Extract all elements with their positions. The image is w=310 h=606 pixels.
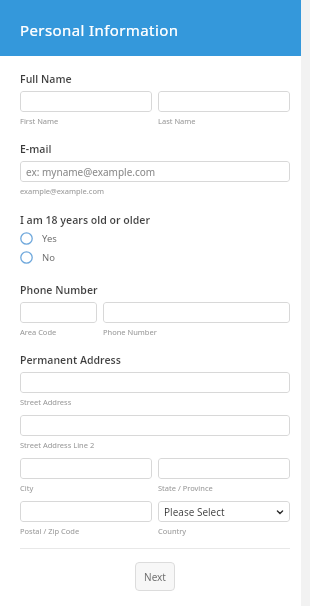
button[interactable] [20,501,152,522]
button[interactable] [20,91,152,112]
staticText: Street Address Line 2 [20,440,95,450]
button[interactable]: No [20,248,290,267]
button[interactable]: Please Select [158,501,290,522]
button[interactable]: ex: myname@example.com [20,161,290,182]
staticText: First Name [20,116,59,126]
staticText: Full Name [20,72,72,86]
button[interactable] [20,372,290,393]
staticText: Permanent Address [20,353,121,367]
button[interactable] [20,415,290,436]
button[interactable] [103,302,290,323]
button[interactable] [158,91,290,112]
staticText: Personal Information [20,20,179,40]
button[interactable] [158,458,290,479]
staticText: I am 18 years old or older [20,213,151,227]
staticText: Street Address [20,397,72,407]
staticText: State / Province [158,483,213,493]
staticText: Please Select [164,505,225,519]
button[interactable]: Next [135,562,175,591]
button[interactable] [20,458,152,479]
staticText: No [42,251,55,264]
staticText: Phone Number [20,283,98,297]
staticText: E-mail [20,142,52,156]
staticText: Last Name [158,116,196,126]
staticText: Country [158,526,187,536]
staticText: Yes [42,232,57,245]
staticText: City [20,483,34,493]
button[interactable] [20,302,97,323]
staticText: Postal / Zip Code [20,526,80,536]
staticText: ex: myname@example.com [26,165,156,179]
staticText: Next [144,570,166,584]
button[interactable]: Yes [20,229,290,248]
staticText: example@example.com [20,186,104,196]
staticText: Area Code [20,327,57,337]
staticText: Phone Number [103,327,157,337]
